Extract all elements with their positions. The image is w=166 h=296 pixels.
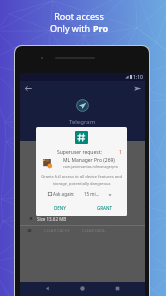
button[interactable]: Recent apps <box>113 284 122 293</box>
staticText: Grants full access to all device feature… <box>40 174 123 186</box>
button[interactable]: CLEAR DATA <box>80 227 107 234</box>
button[interactable]: Home <box>78 284 87 293</box>
staticText: CLEAR CACHE <box>44 228 70 233</box>
staticText: GRANT <box>97 205 113 211</box>
staticText: 15 mi... <box>84 191 100 197</box>
staticText: 1:10 <box>133 74 143 81</box>
staticText: com.javiersantos.mlmanagerpro <box>63 164 118 169</box>
staticText: Only with <box>50 22 93 34</box>
staticText: Root access <box>54 10 104 22</box>
button[interactable]: CLEAR CACHE <box>42 227 72 234</box>
button[interactable]: Back <box>43 284 52 293</box>
staticText: Size 13.62 MB <box>37 216 67 222</box>
button[interactable]: DENY <box>51 203 69 213</box>
button[interactable]: Back <box>24 84 33 93</box>
button[interactable]: Ask again <box>48 192 52 196</box>
staticText: Superuser request: <box>57 149 102 156</box>
staticText: ML Manager Pro (269) <box>63 157 115 164</box>
staticText: 1 <box>119 149 122 156</box>
staticText: DENY <box>54 205 66 211</box>
button[interactable]: Send <box>133 84 142 93</box>
staticText: Ask again: <box>53 191 75 197</box>
staticText: Telegram <box>69 118 96 126</box>
staticText: CLEAR DATA <box>82 228 105 233</box>
staticText: Pro <box>93 22 109 34</box>
button[interactable]: GRANT <box>94 203 116 213</box>
